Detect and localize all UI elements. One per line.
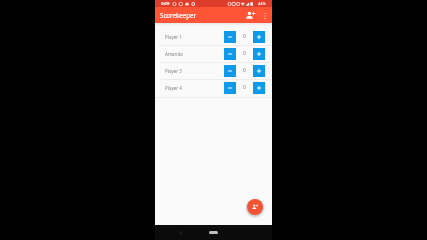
staticText: 44% (258, 1, 266, 6)
staticText: 9:09 (161, 1, 170, 7)
staticText: 0 (243, 84, 246, 91)
button[interactable]: Increase score (253, 48, 265, 60)
button[interactable]: Back (178, 230, 184, 236)
button[interactable]: Add player (247, 199, 263, 215)
button[interactable]: Add player (243, 8, 258, 23)
staticText: 0 (243, 50, 246, 57)
staticText: 0 (243, 33, 246, 40)
button[interactable]: Amanda (155, 45, 272, 62)
button[interactable]: Decrease score (224, 65, 236, 77)
staticText: Scorekeeper (160, 11, 197, 19)
staticText: Player 3 (165, 68, 224, 74)
staticText: Player 1 (165, 34, 224, 40)
button[interactable]: Decrease score (224, 31, 236, 43)
button[interactable]: Player 3 (155, 62, 272, 79)
button[interactable]: More options (258, 9, 272, 23)
staticText: 0 (243, 67, 246, 74)
button[interactable]: Decrease score (224, 82, 236, 94)
button[interactable]: Decrease score (224, 48, 236, 60)
button[interactable]: Player 1 (155, 28, 272, 45)
button[interactable]: Increase score (253, 65, 265, 77)
button[interactable]: Home (209, 231, 218, 234)
staticText: Amanda (165, 51, 224, 57)
staticText: Player 4 (165, 85, 224, 91)
button[interactable]: Increase score (253, 82, 265, 94)
button[interactable]: Increase score (253, 31, 265, 43)
button[interactable]: Player 4 (155, 79, 272, 96)
